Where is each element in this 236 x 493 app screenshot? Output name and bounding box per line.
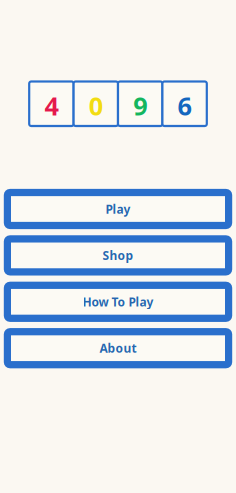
- staticText: Shop: [102, 247, 133, 263]
- button[interactable]: About: [7, 332, 229, 365]
- button[interactable]: Shop: [7, 239, 229, 272]
- staticText: Play: [105, 201, 130, 217]
- staticText: 6: [178, 89, 192, 122]
- button[interactable]: How To Play: [7, 285, 229, 318]
- staticText: 4: [44, 89, 58, 122]
- staticText: How To Play: [82, 294, 153, 310]
- button[interactable]: Play: [7, 192, 229, 225]
- staticText: About: [99, 340, 136, 356]
- staticText: 0: [89, 89, 103, 122]
- staticText: 9: [133, 89, 147, 122]
